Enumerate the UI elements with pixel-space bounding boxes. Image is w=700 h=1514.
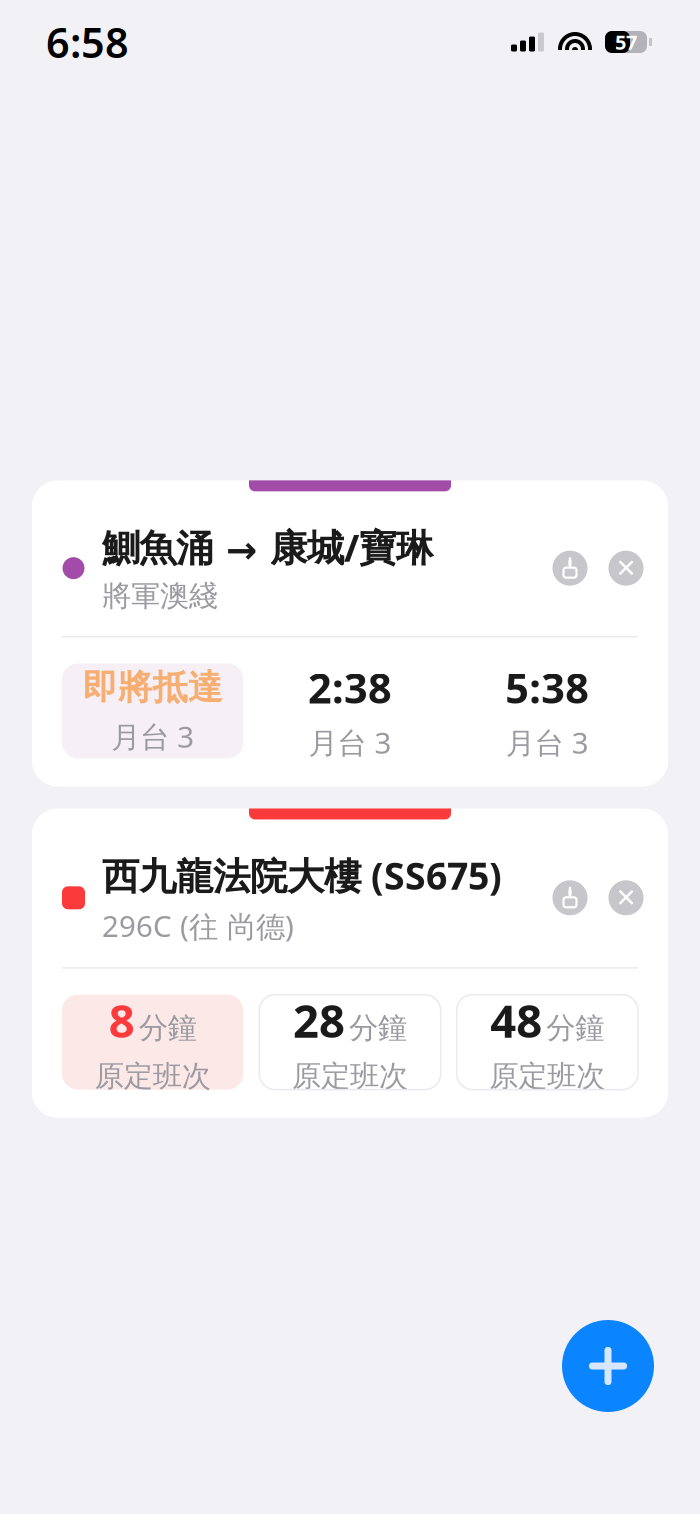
button[interactable]: Close [606, 548, 646, 588]
button[interactable]: 48 [457, 995, 638, 1090]
button[interactable]: Share [550, 878, 590, 918]
staticText: 月台 3 [111, 717, 194, 756]
staticText: 原定班次 [292, 1058, 408, 1094]
button[interactable]: Close [606, 878, 646, 918]
staticText: 鰂魚涌 → 康城/寶琳 [102, 522, 433, 572]
staticText: ✕ [615, 554, 636, 583]
staticText: 即將抵達 [83, 666, 223, 709]
staticText: 48 [490, 990, 542, 1050]
staticText: 57 [615, 29, 637, 55]
staticText: ✕ [615, 883, 636, 912]
staticText: 將軍澳綫 [102, 578, 218, 614]
staticText: 分鐘 [349, 1010, 407, 1046]
staticText: 分鐘 [546, 1010, 604, 1046]
staticText: 6:58 [46, 15, 129, 69]
staticText: 西九龍法院大樓 (SS675) [102, 850, 502, 900]
button[interactable]: 8 [62, 995, 243, 1090]
staticText: 296C (往 尚德) [102, 906, 294, 945]
staticText: 8 [109, 990, 135, 1050]
button[interactable]: 28 [259, 995, 441, 1090]
staticText: 28 [293, 990, 345, 1050]
staticText: 原定班次 [489, 1058, 605, 1094]
staticText: 分鐘 [139, 1010, 197, 1046]
button[interactable]: 即將抵達 [62, 663, 243, 758]
staticText: 原定班次 [95, 1058, 211, 1094]
button[interactable]: 2:38 [259, 663, 441, 758]
button[interactable]: Share [550, 548, 590, 588]
staticText: 月台 3 [308, 723, 391, 762]
staticText: 月台 3 [506, 723, 589, 762]
staticText: 2:38 [308, 660, 392, 715]
button[interactable]: Add [558, 1316, 658, 1416]
button[interactable]: 5:38 [457, 663, 638, 758]
staticText: 5:38 [505, 660, 589, 715]
